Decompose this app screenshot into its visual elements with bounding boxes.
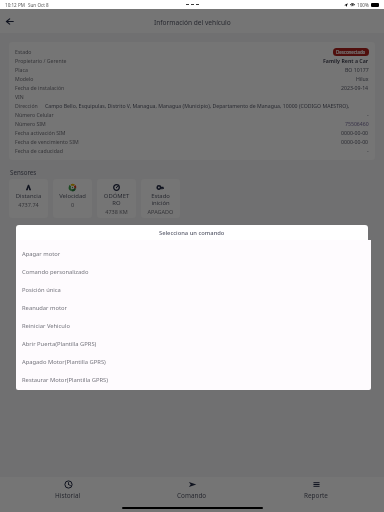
staticText: Estado: [15, 48, 32, 55]
staticText: Modelo: [15, 75, 34, 82]
button[interactable]: Reanudar motor: [22, 299, 371, 317]
staticText: BO 10177: [345, 66, 369, 73]
button[interactable]: Comando personalizado: [22, 263, 371, 281]
staticText: Abrir Puerta(Plantilla GPRS): [22, 340, 97, 348]
staticText: 0000-00-00: [341, 129, 369, 136]
button[interactable]: Comando: [130, 480, 254, 500]
staticText: Fecha de instalación: [15, 84, 65, 91]
staticText: -: [367, 111, 369, 118]
staticText: Selecciona un comando: [159, 229, 225, 237]
staticText: Sensores: [10, 168, 37, 176]
staticText: Apagar motor: [22, 250, 61, 258]
staticText: APAGADO: [146, 208, 175, 215]
staticText: 10:12 PM: [5, 2, 25, 8]
staticText: Placa: [15, 66, 28, 73]
staticText: Estado inición: [146, 192, 175, 207]
staticText: VIN: [15, 93, 24, 100]
staticText: Reporte: [304, 491, 328, 500]
staticText: 2023-09-14: [341, 84, 369, 91]
staticText: Apagado Motor(Plantilla GPRS): [22, 358, 106, 366]
staticText: Dirección: [15, 102, 38, 109]
staticText: ODÓMETRO: [102, 192, 131, 207]
staticText: -: [367, 147, 369, 154]
button[interactable]: Posición única: [22, 281, 371, 299]
staticText: Posición única: [22, 286, 61, 294]
button[interactable]: Historial: [6, 480, 130, 500]
staticText: Sun Oct 8: [28, 2, 49, 8]
staticText: Velocidad: [58, 192, 87, 200]
button[interactable]: Distancia: [9, 179, 48, 218]
staticText: Reanudar motor: [22, 304, 67, 312]
staticText: 75506460: [345, 120, 369, 127]
button[interactable]: Abrir Puerta(Plantilla GPRS): [22, 335, 371, 353]
button[interactable]: Restaurar Motor(Plantilla GPRS): [22, 371, 371, 389]
staticText: Número SIM: [15, 120, 46, 127]
staticText: 0000-00-00: [341, 138, 369, 145]
staticText: Family Rent a Car: [323, 57, 369, 64]
button[interactable]: Velocidad: [53, 179, 92, 218]
staticText: 100%: [357, 2, 369, 8]
button[interactable]: Apagar motor: [22, 245, 371, 263]
staticText: Propietario / Gerente: [15, 57, 67, 64]
staticText: Restaurar Motor(Plantilla GPRS): [22, 376, 108, 384]
staticText: 0: [58, 201, 87, 208]
button[interactable]: Reporte: [254, 480, 378, 500]
staticText: Desconectado: [336, 49, 366, 55]
staticText: Información del vehículo: [154, 18, 231, 27]
staticText: Número Celular: [15, 111, 54, 118]
staticText: Fecha activación SIM: [15, 129, 66, 136]
staticText: Sun Oct 8: [28, 2, 49, 8]
staticText: Hilux: [356, 75, 369, 82]
staticText: Distancia: [14, 192, 43, 200]
button[interactable]: Apagado Motor(Plantilla GPRS): [22, 353, 371, 371]
staticText: Campo Bello, Esquipulas, Distrito V, Man…: [45, 102, 369, 109]
staticText: Fecha de vencimiento SIM: [15, 138, 79, 145]
staticText: 4737.74: [14, 201, 43, 208]
button[interactable]: ODÓMETRO: [97, 179, 136, 218]
staticText: 100%: [357, 2, 369, 8]
staticText: 10:12 PM: [5, 2, 25, 8]
staticText: Reiniciar Vehiculo: [22, 322, 70, 330]
staticText: Comando personalizado: [22, 268, 89, 276]
staticText: Fecha de caducidad: [15, 147, 63, 154]
staticText: Comando: [177, 491, 207, 500]
staticText: 4738 KM: [102, 208, 131, 215]
button[interactable]: Estado inición: [141, 179, 180, 218]
staticText: Historial: [55, 491, 81, 500]
button[interactable]: Back: [2, 14, 16, 28]
button[interactable]: Reiniciar Vehiculo: [22, 317, 371, 335]
